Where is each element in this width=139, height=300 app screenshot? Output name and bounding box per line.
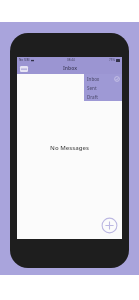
- button[interactable]: Compose message: [100, 216, 118, 234]
- button[interactable]: Mailboxes: [19, 65, 29, 73]
- staticText: Inbox: [63, 65, 77, 72]
- staticText: 08:44: [67, 58, 75, 62]
- button[interactable]: Sent: [84, 83, 122, 92]
- button[interactable]: Inbox: [84, 74, 122, 83]
- staticText: Sent: [87, 85, 97, 91]
- button[interactable]: Draft: [84, 92, 122, 101]
- staticText: Inbox: [87, 76, 100, 82]
- staticText: 75%: [109, 58, 115, 62]
- staticText: No Messages: [50, 144, 89, 152]
- staticText: No SIM: [19, 58, 30, 62]
- staticText: Draft: [87, 94, 99, 100]
